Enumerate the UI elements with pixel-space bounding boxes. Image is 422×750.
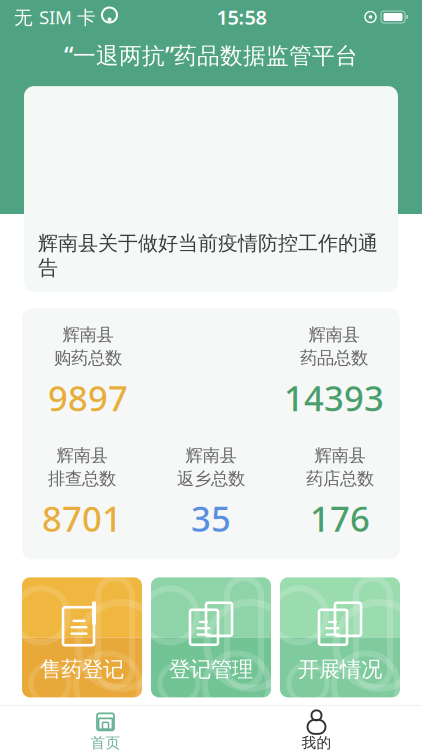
staticText: 9897 — [48, 375, 128, 421]
staticText: 首页 — [90, 734, 120, 750]
staticText: “一退两抗”药品数据监管平台 — [64, 40, 358, 70]
button[interactable]: 售药登记 — [22, 577, 142, 697]
button[interactable]: 辉南县关于做好当前疫情防控工作的通告 — [24, 86, 398, 292]
staticText: 辉南县 — [308, 324, 359, 345]
button[interactable]: 开展情况 — [280, 577, 400, 697]
staticText: 我的 — [301, 734, 331, 750]
staticText: 14393 — [284, 375, 384, 421]
staticText: 售药登记 — [40, 656, 124, 682]
staticText: 176 — [310, 495, 370, 541]
button[interactable]: 首页 — [0, 706, 211, 750]
staticText: 辉南县 — [185, 445, 236, 466]
staticText: 辉南县 — [62, 324, 113, 345]
staticText: 辉南县 — [314, 445, 365, 466]
staticText: 8701 — [42, 495, 122, 541]
staticText: 15:58 — [216, 4, 266, 30]
staticText: 无 SIM 卡 — [14, 5, 96, 29]
staticText: 辉南县关于做好当前疫情防控工作的通告 — [38, 231, 378, 280]
staticText: 开展情况 — [298, 656, 382, 682]
staticText: 购药总数 — [54, 347, 122, 369]
staticText: 排查总数 — [48, 468, 116, 489]
staticText: 辉南县 — [56, 445, 107, 466]
staticText: 登记管理 — [169, 656, 253, 682]
staticText: 药店总数 — [306, 468, 374, 489]
staticText: 返乡总数 — [177, 468, 245, 489]
staticText: 35 — [191, 495, 231, 541]
staticText: 药品总数 — [300, 347, 368, 369]
button[interactable]: 登记管理 — [151, 577, 271, 697]
button[interactable]: 我的 — [211, 706, 422, 750]
